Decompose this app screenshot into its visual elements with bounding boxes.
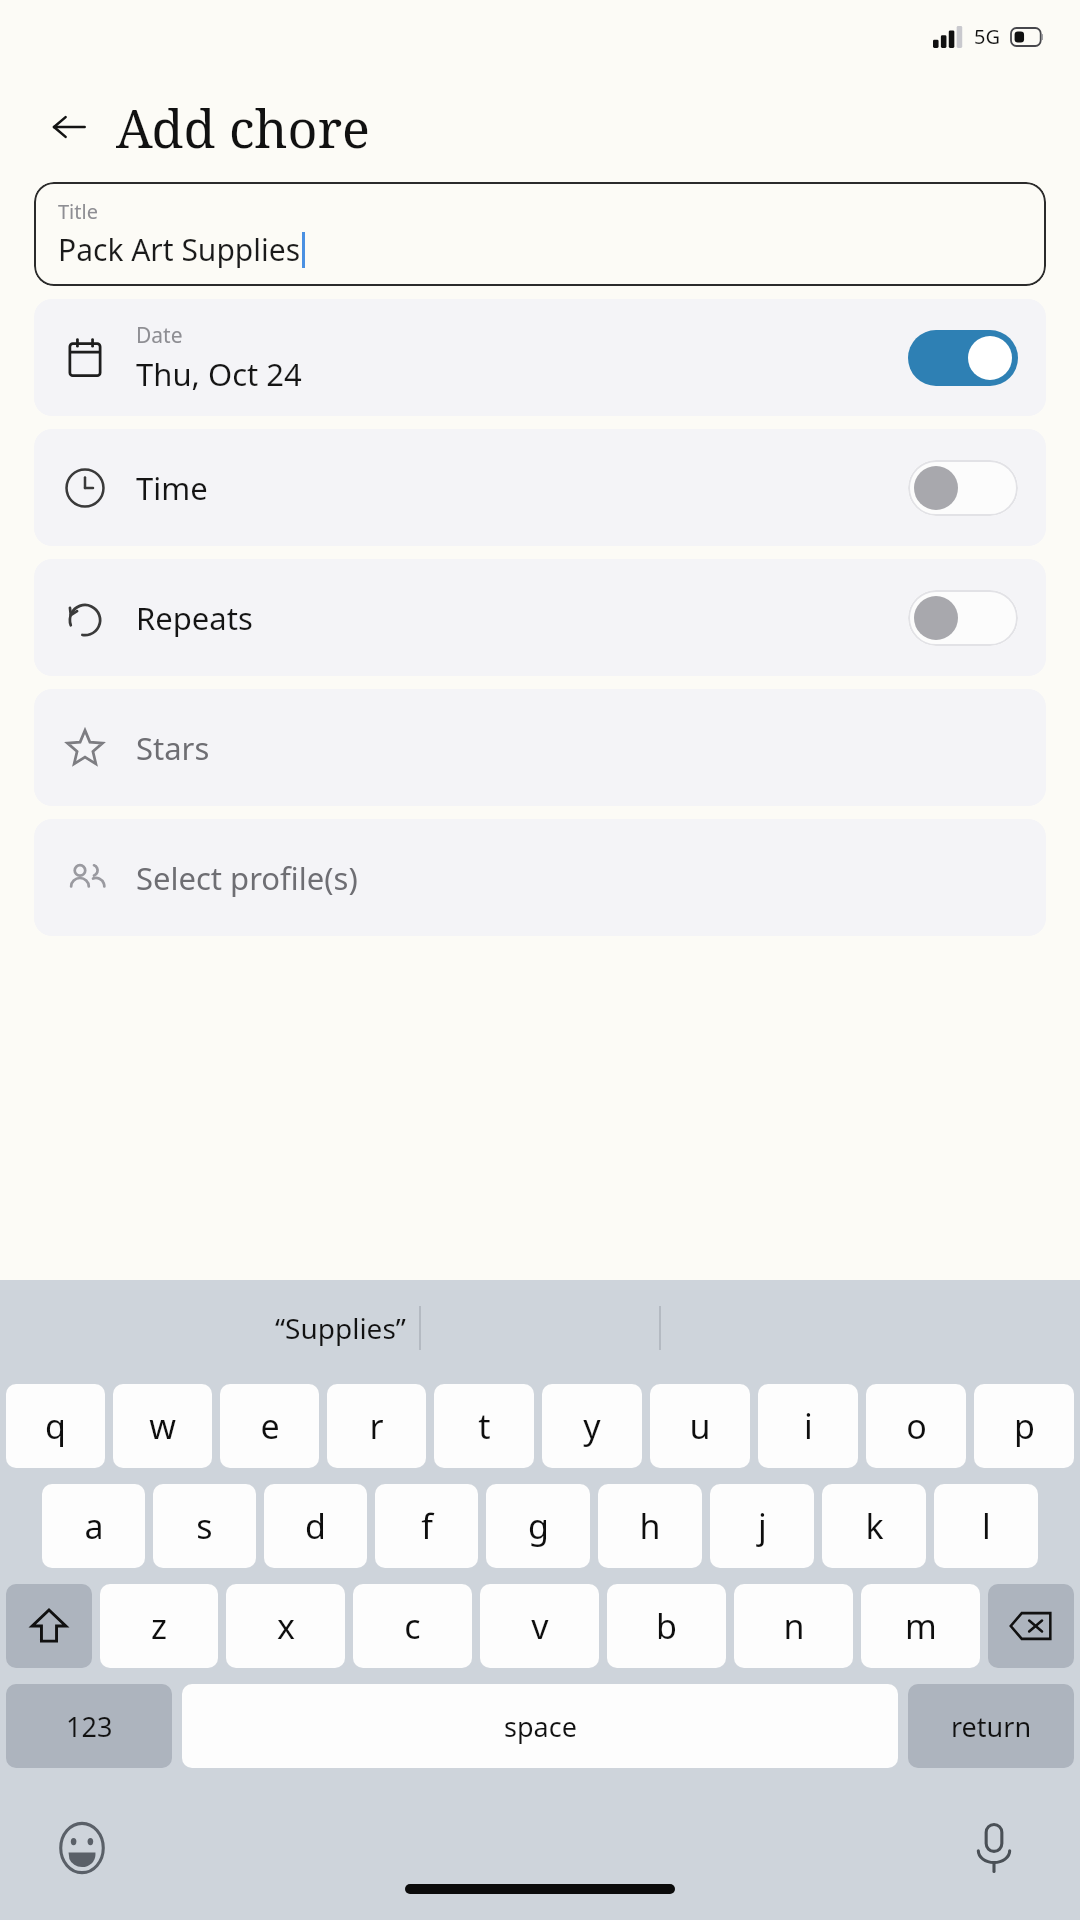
staticText: o (906, 1403, 927, 1449)
button[interactable]: Title (34, 182, 1046, 286)
button[interactable]: i (758, 1384, 858, 1468)
button[interactable]: y (542, 1384, 642, 1468)
staticText: x (277, 1603, 295, 1649)
staticText: d (305, 1503, 326, 1549)
button[interactable]: c (353, 1584, 472, 1668)
button[interactable]: z (100, 1584, 218, 1668)
staticText: h (639, 1503, 661, 1549)
button[interactable]: Emoji (52, 1818, 112, 1878)
button[interactable]: f (375, 1484, 478, 1568)
button[interactable]: 123 (6, 1684, 172, 1768)
staticText: v (531, 1603, 549, 1649)
staticText: j (758, 1503, 767, 1549)
button[interactable]: Toggle on (908, 330, 1018, 386)
staticText: Stars (136, 727, 210, 769)
button[interactable]: Time (34, 429, 1046, 546)
staticText: y (583, 1403, 601, 1449)
staticText: w (149, 1403, 176, 1449)
button[interactable]: e (220, 1384, 319, 1468)
button[interactable]: Toggle off (908, 460, 1018, 516)
button[interactable]: u (650, 1384, 750, 1468)
button[interactable]: Toggle off (908, 590, 1018, 646)
button[interactable]: Repeats (34, 559, 1046, 676)
staticText: k (865, 1503, 884, 1549)
staticText: m (905, 1603, 937, 1649)
staticText: z (151, 1603, 167, 1649)
button[interactable]: k (822, 1484, 926, 1568)
staticText: b (656, 1603, 677, 1649)
button[interactable]: g (486, 1484, 590, 1568)
button[interactable]: d (264, 1484, 367, 1568)
button[interactable]: a (42, 1484, 145, 1568)
button[interactable]: r (327, 1384, 426, 1468)
staticText: q (45, 1403, 66, 1449)
button[interactable]: Select profile(s) (34, 819, 1046, 936)
staticText: Thu, Oct 24 (136, 353, 302, 395)
staticText: r (369, 1403, 384, 1449)
button[interactable]: m (861, 1584, 980, 1668)
staticText: u (689, 1403, 711, 1449)
button[interactable]: Back (38, 96, 100, 158)
button[interactable]: n (734, 1584, 853, 1668)
button[interactable]: Dictate (964, 1818, 1024, 1878)
staticText: l (982, 1503, 991, 1549)
button[interactable]: h (598, 1484, 702, 1568)
button[interactable]: p (974, 1384, 1074, 1468)
button[interactable]: Date (34, 299, 1046, 416)
button[interactable]: w (113, 1384, 212, 1468)
button[interactable]: “Supplies” (275, 1309, 406, 1347)
staticText: i (804, 1403, 813, 1449)
staticText: Repeats (136, 597, 253, 639)
button[interactable]: q (6, 1384, 105, 1468)
staticText: return (951, 1708, 1032, 1745)
staticText: Pack Art Supplies (58, 229, 301, 270)
staticText: a (84, 1503, 104, 1549)
staticText: Add chore (116, 92, 370, 163)
staticText: Select profile(s) (136, 857, 358, 899)
button[interactable]: j (710, 1484, 814, 1568)
staticText: p (1014, 1403, 1035, 1449)
staticText: e (260, 1403, 280, 1449)
staticText: t (478, 1403, 491, 1449)
staticText: space (504, 1708, 577, 1745)
staticText: Title (58, 198, 98, 225)
staticText: n (783, 1603, 805, 1649)
button[interactable]: Shift (6, 1584, 92, 1668)
button[interactable]: return (908, 1684, 1074, 1768)
staticText: s (196, 1503, 213, 1549)
button[interactable]: v (480, 1584, 599, 1668)
staticText: g (528, 1503, 549, 1549)
staticText: Date (136, 321, 183, 350)
staticText: c (404, 1603, 421, 1649)
button[interactable]: space (182, 1684, 898, 1768)
button[interactable]: x (226, 1584, 345, 1668)
staticText: f (421, 1503, 433, 1549)
button[interactable]: o (866, 1384, 966, 1468)
staticText: Time (136, 467, 208, 509)
staticText: 5G (974, 23, 1000, 50)
button[interactable]: l (934, 1484, 1038, 1568)
button[interactable]: b (607, 1584, 726, 1668)
staticText: 123 (66, 1708, 113, 1745)
button[interactable]: Backspace (988, 1584, 1074, 1668)
button[interactable]: s (153, 1484, 256, 1568)
button[interactable]: t (434, 1384, 534, 1468)
button[interactable]: Stars (34, 689, 1046, 806)
